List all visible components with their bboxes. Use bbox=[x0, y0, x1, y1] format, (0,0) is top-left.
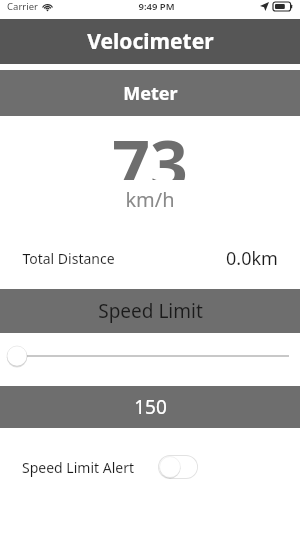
staticText: Velocimeter bbox=[87, 27, 214, 56]
button[interactable]: Speed Limit Alert toggle, off bbox=[158, 455, 198, 479]
staticText: 0.0km bbox=[226, 246, 278, 271]
staticText: Carrier bbox=[7, 0, 38, 13]
staticText: km/h bbox=[125, 186, 175, 213]
button[interactable]: Meter bbox=[0, 70, 300, 116]
button[interactable]: Speed limit slider bbox=[0, 344, 300, 368]
staticText: 73 bbox=[112, 118, 188, 180]
button[interactable]: 150 bbox=[0, 386, 300, 428]
staticText: Total Distance bbox=[22, 249, 115, 268]
staticText: 9:49 PM bbox=[138, 0, 175, 13]
staticText: Speed Limit Alert bbox=[22, 458, 134, 477]
staticText: 150 bbox=[134, 394, 167, 420]
button[interactable]: Speed Limit bbox=[0, 289, 300, 333]
button[interactable]: Velocimeter bbox=[0, 19, 300, 64]
staticText: Meter bbox=[123, 81, 178, 106]
staticText: Speed Limit bbox=[98, 298, 203, 324]
